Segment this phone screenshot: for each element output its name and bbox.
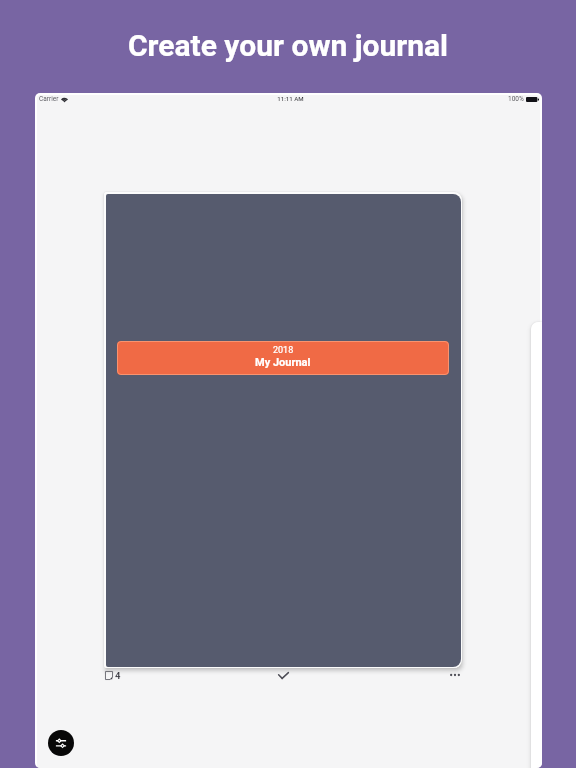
staticText: 100% bbox=[508, 95, 524, 103]
staticText: 4 bbox=[115, 670, 121, 681]
button[interactable]: More options bbox=[443, 665, 467, 685]
button[interactable]: 2018 bbox=[106, 194, 461, 667]
staticText: 2018 bbox=[273, 345, 294, 356]
staticText: Carrier bbox=[39, 95, 59, 103]
button[interactable]: Pages: 4 bbox=[105, 666, 133, 684]
staticText: 11:11 AM bbox=[37, 95, 542, 102]
button[interactable]: Filter settings bbox=[48, 730, 74, 756]
staticText: My Journal bbox=[255, 356, 311, 369]
staticText: Create your own journal bbox=[0, 28, 576, 63]
button[interactable]: 2018 bbox=[117, 341, 449, 375]
button[interactable]: Done bbox=[271, 665, 295, 685]
